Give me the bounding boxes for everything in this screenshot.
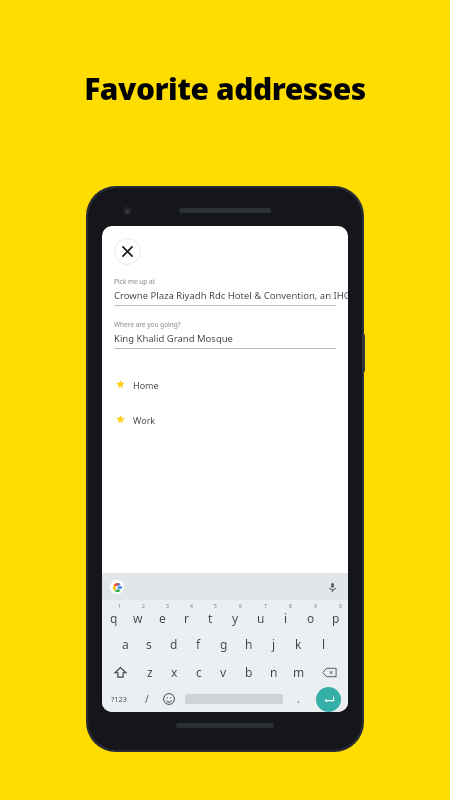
button[interactable]: 0 bbox=[323, 600, 348, 630]
button[interactable]: k bbox=[286, 630, 311, 658]
button[interactable]: Backspace bbox=[311, 658, 348, 686]
staticText: 9 bbox=[314, 603, 317, 610]
button[interactable]: 5 bbox=[198, 600, 223, 630]
staticText: Where are you going? bbox=[114, 320, 181, 329]
staticText: f bbox=[196, 636, 201, 652]
staticText: m bbox=[293, 664, 305, 680]
button[interactable]: Close bbox=[114, 238, 141, 265]
staticText: j bbox=[272, 636, 276, 652]
button[interactable]: d bbox=[161, 630, 186, 658]
button[interactable]: l bbox=[311, 630, 336, 658]
button[interactable]: Emoji bbox=[158, 686, 180, 712]
staticText: / bbox=[145, 692, 149, 706]
staticText: h bbox=[245, 636, 253, 652]
staticText: v bbox=[220, 664, 227, 680]
staticText: 6 bbox=[239, 603, 242, 610]
staticText: c bbox=[196, 664, 202, 680]
button[interactable]: 6 bbox=[223, 600, 248, 630]
button[interactable]: Shift bbox=[102, 658, 138, 686]
staticText: Crowne Plaza Riyadh Rdc Hotel & Conventi… bbox=[114, 289, 348, 302]
staticText: 5 bbox=[214, 603, 217, 610]
staticText: Pick me up at bbox=[114, 277, 156, 286]
staticText: x bbox=[171, 664, 178, 680]
button[interactable]: 2 bbox=[126, 600, 150, 630]
button[interactable]: Work bbox=[102, 402, 348, 437]
staticText: w bbox=[133, 610, 143, 626]
staticText: s bbox=[146, 636, 152, 652]
button[interactable]: g bbox=[211, 630, 236, 658]
staticText: i bbox=[284, 610, 288, 626]
staticText: k bbox=[295, 636, 302, 652]
staticText: ?123 bbox=[111, 694, 128, 704]
staticText: n bbox=[270, 664, 278, 680]
staticText: 3 bbox=[166, 603, 169, 610]
staticText: 2 bbox=[142, 603, 145, 610]
button[interactable]: Space bbox=[180, 686, 287, 712]
button[interactable]: Voice input bbox=[325, 580, 339, 594]
button[interactable]: 7 bbox=[248, 600, 273, 630]
button[interactable]: 9 bbox=[298, 600, 323, 630]
staticText: l bbox=[322, 636, 326, 652]
staticText: u bbox=[257, 610, 265, 626]
staticText: 0 bbox=[339, 603, 342, 610]
staticText: p bbox=[332, 610, 340, 626]
button[interactable]: Enter bbox=[309, 686, 348, 712]
button[interactable]: Google bbox=[110, 580, 124, 594]
button[interactable]: m bbox=[286, 658, 311, 686]
button[interactable]: / bbox=[136, 686, 158, 712]
staticText: King Khalid Grand Mosque bbox=[114, 332, 233, 345]
staticText: b bbox=[245, 664, 253, 680]
staticText: e bbox=[159, 610, 166, 626]
staticText: Home bbox=[133, 379, 159, 391]
button[interactable]: 8 bbox=[273, 600, 298, 630]
staticText: r bbox=[184, 610, 189, 626]
button[interactable]: j bbox=[261, 630, 286, 658]
button[interactable]: h bbox=[236, 630, 261, 658]
staticText: q bbox=[110, 610, 118, 626]
staticText: y bbox=[232, 610, 239, 626]
button[interactable]: c bbox=[186, 658, 211, 686]
staticText: t bbox=[208, 610, 213, 626]
button[interactable]: . bbox=[287, 686, 309, 712]
button[interactable]: v bbox=[211, 658, 236, 686]
button[interactable]: x bbox=[162, 658, 186, 686]
staticText: Work bbox=[133, 414, 156, 426]
button[interactable]: ?123 bbox=[102, 686, 136, 712]
staticText: a bbox=[122, 636, 129, 652]
staticText: 4 bbox=[190, 603, 193, 610]
button[interactable]: 4 bbox=[174, 600, 198, 630]
staticText: 8 bbox=[289, 603, 292, 610]
staticText: g bbox=[220, 636, 228, 652]
button[interactable]: 1 bbox=[102, 600, 126, 630]
staticText: Favorite addresses bbox=[84, 68, 366, 109]
staticText: 7 bbox=[264, 603, 267, 610]
staticText: d bbox=[170, 636, 178, 652]
button[interactable]: f bbox=[186, 630, 211, 658]
staticText: o bbox=[307, 610, 315, 626]
button[interactable]: 3 bbox=[150, 600, 174, 630]
button[interactable]: n bbox=[261, 658, 286, 686]
button[interactable]: Home bbox=[102, 367, 348, 402]
button[interactable]: s bbox=[137, 630, 161, 658]
staticText: z bbox=[147, 664, 153, 680]
button[interactable]: a bbox=[113, 630, 137, 658]
button[interactable]: b bbox=[236, 658, 261, 686]
staticText: 1 bbox=[118, 603, 121, 610]
staticText: . bbox=[297, 692, 300, 706]
button[interactable]: z bbox=[138, 658, 162, 686]
